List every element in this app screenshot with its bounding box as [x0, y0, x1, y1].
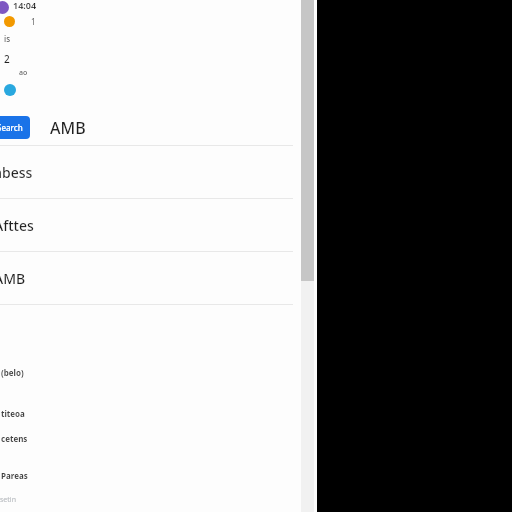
staticText: Search [0, 122, 23, 133]
staticText: cetens [1, 433, 28, 444]
staticText: ao [19, 68, 28, 78]
button[interactable]: (belo) [0, 367, 317, 378]
staticText: Pareas [1, 470, 28, 481]
button[interactable]: AMB [0, 252, 317, 304]
button[interactable]: Search [0, 116, 30, 139]
staticText: 2 [4, 52, 10, 66]
staticText: is [4, 33, 11, 44]
button[interactable]: Afttes [0, 199, 317, 251]
button[interactable]: cetens [0, 433, 317, 444]
staticText: Afttes [0, 216, 34, 235]
staticText: titeoa [1, 408, 25, 419]
staticText: AMB [0, 269, 26, 288]
button[interactable]: Pareas [0, 470, 317, 481]
staticText: (belo) [1, 367, 24, 378]
button[interactable]: abess [0, 146, 317, 198]
staticText: AMB [50, 117, 86, 139]
staticText: 1 [31, 16, 36, 27]
staticText: setin [0, 495, 16, 505]
staticText: abess [0, 163, 33, 182]
staticText: 14:04 [13, 0, 37, 11]
button[interactable]: titeoa [0, 408, 317, 419]
